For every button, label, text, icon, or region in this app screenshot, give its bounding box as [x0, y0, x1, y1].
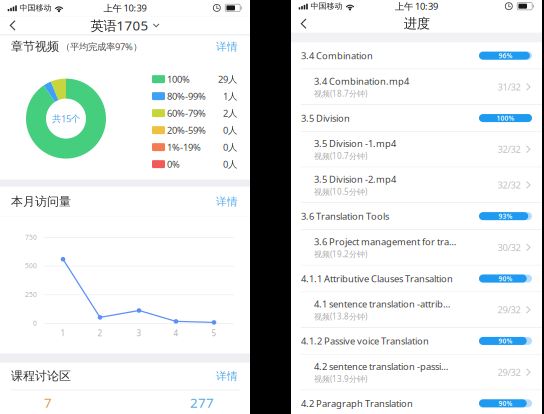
- staticText: （平均完成率97%）: [61, 40, 142, 53]
- staticText: 视频(19.2分钟): [314, 249, 367, 259]
- staticText: 277: [190, 394, 214, 411]
- staticText: 视频(13.8分钟): [314, 311, 367, 322]
- button[interactable]: 3.6 Project management for tra…: [291, 230, 542, 265]
- staticText: 4.1.2 Passive voice Translation: [301, 335, 429, 347]
- button[interactable]: 4.2 sentence translation -passi…: [291, 355, 542, 390]
- staticText: 3.5 Division: [301, 112, 350, 124]
- staticText: 90%: [498, 274, 512, 283]
- staticText: 3.5 Division -2.mp4: [314, 173, 396, 185]
- button[interactable]: 3.5 Division -1.mp4: [291, 132, 542, 167]
- staticText: 章节视频: [11, 39, 59, 54]
- staticText: 500: [25, 261, 37, 270]
- staticText: 本月访问量: [11, 194, 71, 209]
- staticText: 详情: [216, 195, 238, 208]
- staticText: 视频(13.9分钟): [314, 373, 367, 384]
- staticText: 32/32: [498, 143, 521, 155]
- button[interactable]: 4.2 Paragraph Translation: [291, 390, 542, 414]
- staticText: 29/32: [498, 304, 521, 316]
- button[interactable]: 4.1.1 Attributive Clauses Transaltion: [291, 265, 542, 291]
- staticText: 29/32: [498, 366, 521, 378]
- button[interactable]: 7: [0, 391, 96, 414]
- staticText: 3.4 Combination.mp4: [314, 75, 409, 87]
- button[interactable]: 详情: [200, 363, 238, 389]
- staticText: 5: [211, 328, 216, 338]
- staticText: 4: [173, 328, 178, 338]
- staticText: 7: [44, 394, 52, 411]
- button[interactable]: 3.5 Division -2.mp4: [291, 167, 542, 202]
- staticText: 0人: [223, 141, 237, 153]
- staticText: 详情: [216, 369, 238, 383]
- staticText: 4.1 sentence translation -attrib…: [314, 298, 450, 310]
- button[interactable]: 277: [154, 391, 250, 414]
- staticText: 1: [60, 328, 65, 338]
- button[interactable]: Back: [0, 17, 25, 34]
- staticText: 2人: [223, 107, 237, 119]
- button[interactable]: 3.4 Combination.mp4: [291, 69, 542, 104]
- staticText: 2: [97, 328, 102, 338]
- staticText: 0人: [223, 158, 237, 170]
- staticText: 中国移动: [19, 3, 51, 13]
- staticText: 视频(10.7分钟): [314, 151, 367, 161]
- staticText: 0: [33, 319, 37, 328]
- staticText: 29人: [218, 73, 237, 85]
- staticText: 进度: [404, 15, 430, 32]
- staticText: 100%: [167, 73, 190, 85]
- staticText: 90%: [498, 336, 512, 345]
- button[interactable]: Back: [291, 15, 316, 32]
- staticText: 32/32: [498, 179, 521, 191]
- staticText: 96%: [498, 51, 512, 60]
- button[interactable]: 详情: [200, 189, 238, 214]
- staticText: 1人: [223, 90, 237, 102]
- staticText: 60%-79%: [167, 107, 206, 119]
- staticText: 3.4 Combination: [301, 49, 373, 62]
- staticText: 100%: [496, 114, 514, 122]
- staticText: 30/32: [498, 241, 521, 254]
- button[interactable]: 3.5 Division: [291, 105, 542, 131]
- staticText: 4.2 sentence translation -passi…: [314, 360, 448, 372]
- staticText: 90%: [498, 399, 512, 408]
- staticText: 250: [25, 290, 37, 299]
- staticText: 4.1.1 Attributive Clauses Transaltion: [301, 272, 453, 285]
- button[interactable]: 4.1.2 Passive voice Translation: [291, 328, 542, 354]
- staticText: 80%-99%: [167, 90, 206, 102]
- staticText: 3.5 Division -1.mp4: [314, 137, 396, 150]
- staticText: 共15个: [52, 112, 80, 125]
- staticText: 上午 10:39: [395, 0, 438, 12]
- staticText: 视频(10.5分钟): [314, 186, 367, 197]
- button[interactable]: 4.1 sentence translation -attrib…: [291, 292, 542, 327]
- staticText: 视频(18.7分钟): [314, 88, 367, 99]
- staticText: 中国移动: [310, 1, 342, 11]
- staticText: 3.6 Project management for tra…: [314, 235, 456, 248]
- staticText: 4.2 Paragraph Translation: [301, 397, 413, 410]
- staticText: 详情: [216, 40, 238, 53]
- staticText: 20%-59%: [167, 124, 206, 136]
- staticText: 0人: [223, 124, 237, 136]
- button[interactable]: 3.4 Combination: [291, 43, 542, 69]
- staticText: 3.6 Translation Tools: [301, 210, 389, 222]
- staticText: 750: [25, 233, 37, 242]
- staticText: 课程讨论区: [11, 369, 71, 383]
- staticText: 31/32: [498, 81, 521, 93]
- button[interactable]: 英语1705: [90, 14, 160, 36]
- button[interactable]: 详情: [200, 34, 238, 59]
- button[interactable]: 3.6 Translation Tools: [291, 203, 542, 229]
- staticText: 英语1705: [90, 16, 148, 34]
- staticText: 0%: [167, 158, 180, 170]
- staticText: 3: [136, 328, 141, 338]
- staticText: 93%: [498, 212, 512, 221]
- staticText: 上午 10:39: [103, 2, 146, 14]
- staticText: 1%-19%: [167, 141, 201, 153]
